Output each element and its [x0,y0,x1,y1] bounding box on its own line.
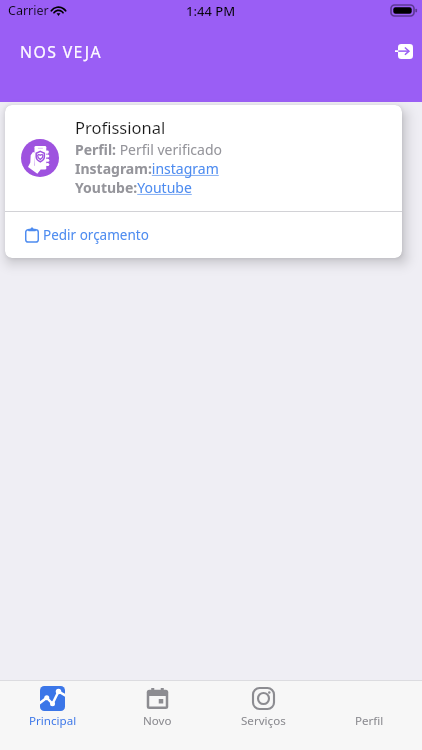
staticText: Pedir orçamento [43,226,149,244]
staticText: Perfil: Perfil verificado [75,140,222,159]
button[interactable]: Pedir orçamento [5,212,402,258]
button[interactable]: Serviços [210,681,316,729]
button[interactable]: Sair [387,34,421,68]
staticText: Principal [29,713,77,729]
button[interactable]: Principal [0,681,105,729]
button[interactable]: Novo [105,681,210,729]
staticText: Instagram:instagram [75,159,219,178]
staticText: NOS VEJA [20,41,102,63]
staticText: Perfil [355,713,384,729]
staticText: Serviços [241,713,286,729]
staticText: 1:44 PM [186,2,236,20]
button[interactable]: Perfil [316,681,422,729]
staticText: Novo [143,713,172,729]
staticText: Profissional [75,116,166,138]
staticText: Carrier [8,2,49,19]
staticText: Youtube:Youtube [75,178,192,197]
